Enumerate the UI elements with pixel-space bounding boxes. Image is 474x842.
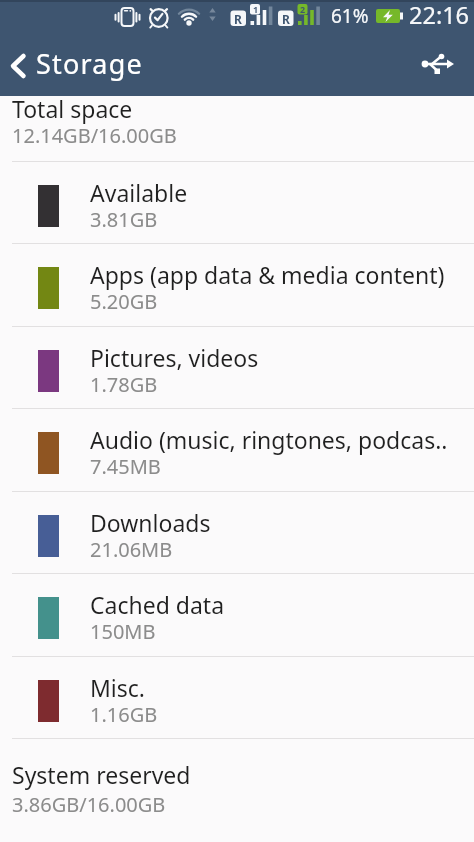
staticText: Apps (app data & media content) xyxy=(90,259,445,290)
button[interactable]: Misc. xyxy=(0,656,474,738)
staticText: System reserved xyxy=(12,759,191,790)
staticText: Available xyxy=(90,177,188,208)
staticText: 22:16 xyxy=(409,0,470,31)
staticText: 1.78GB xyxy=(90,371,158,398)
button[interactable]: Audio (music, ringtones, podcas.. xyxy=(0,408,474,490)
staticText: 3.86GB/16.00GB xyxy=(12,791,166,818)
staticText: 2 xyxy=(300,3,306,15)
staticText: Misc. xyxy=(90,672,146,703)
staticText: 21.06MB xyxy=(90,536,173,563)
button[interactable]: Storage xyxy=(0,40,190,90)
staticText: Downloads xyxy=(90,507,211,538)
staticText: 1 xyxy=(253,3,259,15)
button[interactable] xyxy=(414,48,462,84)
staticText: R xyxy=(282,11,290,27)
staticText: Total space xyxy=(12,93,133,124)
staticText: Audio (music, ringtones, podcas.. xyxy=(90,424,448,455)
staticText: R xyxy=(234,11,242,27)
staticText: 150MB xyxy=(90,618,156,645)
staticText: 12.14GB/16.00GB xyxy=(12,122,177,149)
button[interactable]: Pictures, videos xyxy=(0,326,474,408)
staticText: 5.20GB xyxy=(90,288,158,315)
button[interactable]: Apps (app data & media content) xyxy=(0,243,474,325)
button[interactable]: Cached data xyxy=(0,573,474,655)
staticText: 7.45MB xyxy=(90,453,161,480)
staticText: Storage xyxy=(36,45,143,82)
staticText: 3.81GB xyxy=(90,206,158,233)
staticText: 1.16GB xyxy=(90,701,158,728)
button[interactable]: Available xyxy=(0,161,474,243)
staticText: Cached data xyxy=(90,589,225,620)
staticText: Pictures, videos xyxy=(90,342,259,373)
staticText: 61% xyxy=(331,3,369,29)
button[interactable]: Downloads xyxy=(0,491,474,573)
